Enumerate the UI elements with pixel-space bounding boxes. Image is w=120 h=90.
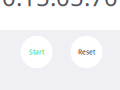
staticText: 0:15:05.70 — [2, 0, 118, 13]
button[interactable]: Reset — [70, 36, 102, 68]
staticText: Reset — [78, 48, 95, 56]
staticText: Start — [29, 48, 44, 56]
button[interactable]: Start — [20, 36, 52, 68]
